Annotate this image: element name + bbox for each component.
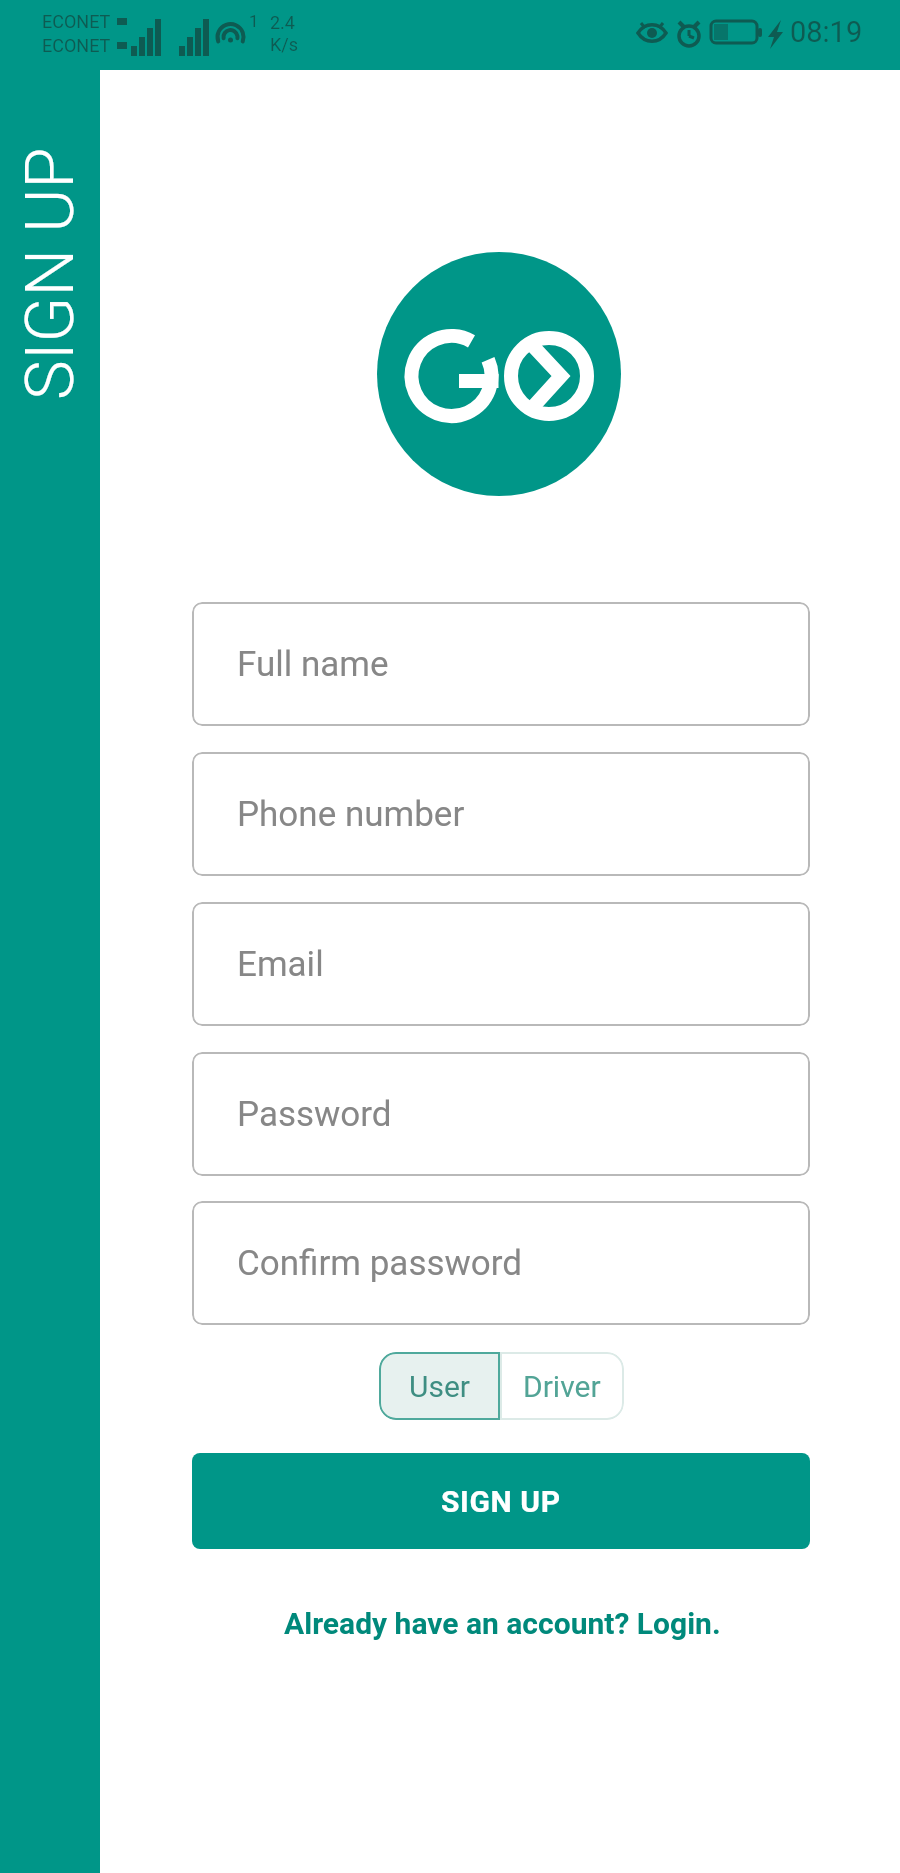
staticText: SIGN UP [441, 1484, 561, 1519]
staticText: Phone number [237, 794, 465, 835]
button[interactable]: Password [192, 1052, 810, 1176]
button[interactable]: User [379, 1352, 500, 1420]
staticText: Email [237, 944, 324, 985]
staticText: 2.4 [270, 12, 295, 33]
staticText: User [409, 1369, 471, 1404]
button[interactable]: Email [192, 902, 810, 1026]
staticText: K/s [270, 34, 299, 55]
staticText: Driver [523, 1369, 601, 1404]
button[interactable]: Full name [192, 602, 810, 726]
staticText: Already have an account? Login. [284, 1606, 721, 1641]
button[interactable]: Phone number [192, 752, 810, 876]
staticText: Password [237, 1094, 392, 1135]
staticText: 1 [249, 11, 259, 31]
staticText: SIGN UP [11, 147, 90, 400]
button[interactable]: Driver [500, 1352, 624, 1420]
button[interactable]: SIGN UP [192, 1453, 810, 1549]
staticText: 08:19 [790, 15, 863, 49]
staticText: Full name [237, 644, 389, 685]
button[interactable]: Already have an account? Login. [280, 1602, 725, 1645]
other: GO logo [377, 252, 621, 496]
staticText: ECONET [42, 11, 111, 32]
staticText: ECONET [42, 35, 111, 56]
button[interactable]: Confirm password [192, 1201, 810, 1325]
staticText: Confirm password [237, 1243, 523, 1284]
